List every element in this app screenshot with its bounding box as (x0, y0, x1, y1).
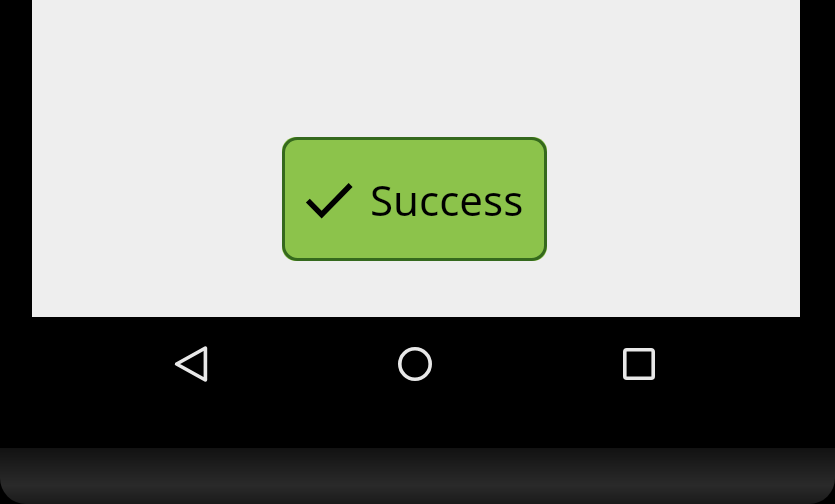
button[interactable]: Back (155, 328, 227, 400)
button[interactable]: Home (379, 328, 451, 400)
button[interactable]: Recent apps (603, 328, 675, 400)
button[interactable]: Success (282, 137, 547, 261)
staticText: Success (370, 171, 524, 228)
